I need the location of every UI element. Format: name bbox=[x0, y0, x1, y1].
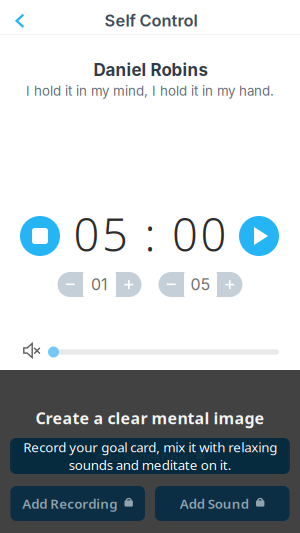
button[interactable]: Increase bbox=[116, 272, 141, 297]
staticText: Record your goal card, mix it with relax… bbox=[23, 438, 277, 474]
staticText: 01 bbox=[91, 275, 108, 294]
button[interactable]: Stop bbox=[20, 216, 60, 256]
button[interactable]: Decrease bbox=[158, 272, 184, 297]
button[interactable]: Increase bbox=[217, 272, 242, 297]
staticText: Add Recording bbox=[22, 495, 117, 512]
button[interactable]: Play bbox=[239, 216, 279, 256]
button[interactable]: Mute bbox=[16, 338, 40, 362]
button[interactable]: Add Recording bbox=[10, 486, 145, 521]
button[interactable]: Back bbox=[1, 4, 39, 38]
staticText: Add Sound bbox=[180, 495, 249, 512]
staticText: 05 bbox=[190, 275, 210, 294]
staticText: Self Control bbox=[104, 11, 197, 30]
staticText: Add Slideshow bbox=[95, 447, 189, 465]
staticText: Create a clear mental image bbox=[35, 407, 264, 429]
staticText: I hold it in my mind, I hold it in my ha… bbox=[26, 83, 274, 99]
button[interactable]: Add Slideshow bbox=[10, 438, 290, 474]
staticText: Daniel Robins bbox=[93, 60, 207, 80]
button[interactable]: Decrease bbox=[57, 272, 83, 297]
staticText: 05 : 00 bbox=[74, 204, 226, 264]
button[interactable]: Add Sound bbox=[155, 486, 289, 521]
